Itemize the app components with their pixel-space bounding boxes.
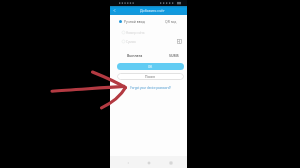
button[interactable]: Home [144,158,153,167]
staticText: Forgot your device password? [130,86,171,90]
staticText: Выплата [127,53,143,58]
button[interactable]: Forgot your device password? [110,85,187,91]
staticText: Добавить счёт [140,8,165,13]
button[interactable]: Recent apps [166,158,175,167]
button[interactable]: Номер счёта [110,29,187,36]
button[interactable]: ОК [117,63,184,70]
button[interactable]: Back [111,7,118,14]
button[interactable]: Ручной ввод [110,18,187,25]
staticText: Номер счёта [126,31,145,35]
staticText: SUMS [169,53,179,58]
staticText: Ручной ввод [124,19,145,24]
staticText: QR код [165,19,177,24]
button[interactable]: Поиск [117,73,184,80]
button[interactable]: Сумма [110,38,187,45]
staticText: Поиск [145,74,156,79]
staticText: ОК [148,65,153,69]
button[interactable]: Scan QR code [177,39,182,44]
staticText: Сумма [126,40,136,44]
